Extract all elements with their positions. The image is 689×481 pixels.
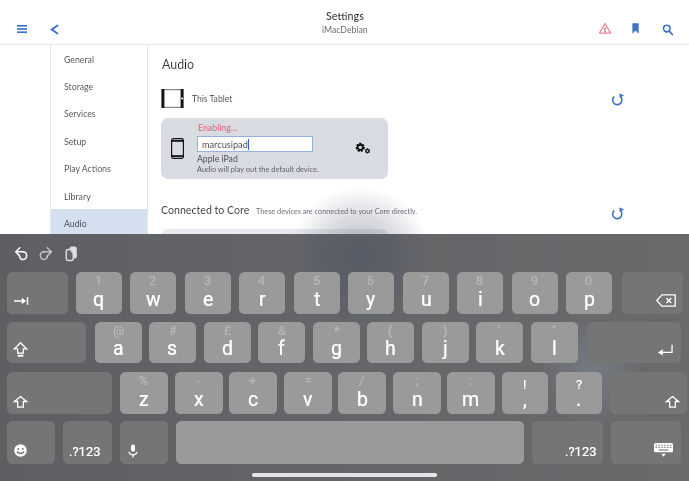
staticText: 2 xyxy=(149,273,157,288)
staticText: % xyxy=(139,373,149,388)
button[interactable]: 9 xyxy=(512,272,558,314)
staticText: ' xyxy=(498,323,501,338)
button[interactable]: 4 xyxy=(239,272,285,314)
staticText: Connected to Core xyxy=(161,204,250,217)
button[interactable]: ; xyxy=(393,372,441,414)
button[interactable]: Paste xyxy=(58,240,84,266)
button[interactable]: = xyxy=(284,372,332,414)
staticText: marcusipad xyxy=(202,139,248,150)
button[interactable]: & xyxy=(258,322,305,363)
staticText: 8 xyxy=(476,273,484,288)
button[interactable]: Undo xyxy=(8,240,34,266)
button[interactable]: Settings xyxy=(349,135,373,159)
button[interactable]: kbd xyxy=(611,421,681,464)
button[interactable]: 0 xyxy=(566,272,612,314)
staticText: i xyxy=(478,288,483,311)
staticText: 4 xyxy=(258,273,266,288)
staticText: General xyxy=(64,54,94,64)
button[interactable]: Play Actions xyxy=(51,154,147,181)
button[interactable]: Bookmark xyxy=(622,15,649,42)
staticText: - xyxy=(197,373,201,388)
button[interactable]: ? xyxy=(556,372,602,414)
button[interactable]: 2 xyxy=(130,272,176,314)
button[interactable]: Audio xyxy=(51,209,147,236)
staticText: Storage xyxy=(64,81,94,91)
button[interactable]: £ xyxy=(204,322,251,363)
button[interactable]: Setup xyxy=(51,127,147,154)
staticText: k xyxy=(495,337,505,360)
button[interactable]: " xyxy=(531,322,578,363)
button[interactable]: Warning xyxy=(591,15,618,42)
button[interactable]: bksp xyxy=(622,272,683,314)
staticText: ! xyxy=(523,377,527,392)
staticText: 3 xyxy=(204,273,212,288)
button[interactable]: Refresh xyxy=(606,202,628,224)
button[interactable]: - xyxy=(175,372,223,414)
button[interactable]: 5 xyxy=(294,272,340,314)
button[interactable]: .?123 xyxy=(532,421,603,464)
staticText: Audio xyxy=(162,57,195,72)
staticText: 6 xyxy=(367,273,375,288)
staticText: 5 xyxy=(313,273,321,288)
staticText: ) xyxy=(443,323,448,338)
button[interactable]: 8 xyxy=(457,272,503,314)
button[interactable]: / xyxy=(338,372,386,414)
staticText: = xyxy=(305,373,312,388)
button[interactable]: Back xyxy=(40,15,68,43)
button[interactable]: shiftL xyxy=(7,372,112,414)
staticText: ? xyxy=(576,377,583,392)
staticText: iMacDebian xyxy=(322,24,368,34)
button[interactable]: ! xyxy=(502,372,548,414)
staticText: h xyxy=(385,337,396,360)
button[interactable]: 1 xyxy=(76,272,122,314)
button[interactable]: 6 xyxy=(348,272,394,314)
staticText: b xyxy=(357,388,368,411)
button[interactable]: emoji xyxy=(7,421,55,464)
button[interactable]: caps xyxy=(7,322,86,363)
staticText: * xyxy=(334,323,340,338)
staticText: c xyxy=(248,388,259,411)
button[interactable]: Enabling... xyxy=(161,118,388,179)
staticText: , xyxy=(523,388,527,411)
button[interactable]: enter xyxy=(587,322,681,363)
staticText: .?123 xyxy=(69,444,101,459)
button[interactable]: Refresh xyxy=(606,88,628,110)
staticText: 7 xyxy=(422,273,430,288)
button[interactable]: General xyxy=(51,45,147,72)
staticText: : xyxy=(469,373,473,388)
button[interactable]: Redo xyxy=(33,240,59,266)
staticText: £ xyxy=(224,323,232,338)
button[interactable]: 7 xyxy=(403,272,449,314)
button[interactable] xyxy=(161,229,388,249)
button[interactable]: Library xyxy=(51,182,147,209)
button[interactable]: # xyxy=(149,322,196,363)
button[interactable]: shiftR xyxy=(610,372,687,414)
button[interactable]: Storage xyxy=(51,72,147,99)
staticText: u xyxy=(421,288,432,311)
button[interactable]: * xyxy=(313,322,360,363)
button[interactable]: mic xyxy=(120,421,168,464)
button[interactable]: + xyxy=(229,372,277,414)
button[interactable]: ' xyxy=(476,322,523,363)
staticText: Audio will play out the default device. xyxy=(197,165,319,174)
staticText: o xyxy=(529,288,541,311)
button[interactable]: ( xyxy=(367,322,414,363)
staticText: " xyxy=(552,323,557,338)
button[interactable]: tab xyxy=(7,272,68,314)
staticText: e xyxy=(203,288,214,311)
button[interactable]: .?123 xyxy=(63,421,112,464)
staticText: f xyxy=(278,337,285,360)
button[interactable]: ) xyxy=(422,322,469,363)
staticText: x xyxy=(194,388,204,411)
button[interactable]: Search xyxy=(654,16,681,43)
button[interactable]: This Tablet xyxy=(161,89,233,108)
staticText: These devices are connected to your Core… xyxy=(256,207,418,216)
staticText: d xyxy=(222,337,233,360)
button[interactable]: Services xyxy=(51,99,147,126)
button[interactable]: @ xyxy=(95,322,142,363)
button[interactable]: 3 xyxy=(185,272,231,314)
button[interactable]: % xyxy=(120,372,168,414)
button[interactable]: : xyxy=(447,372,495,414)
button[interactable]: Menu xyxy=(8,15,36,43)
